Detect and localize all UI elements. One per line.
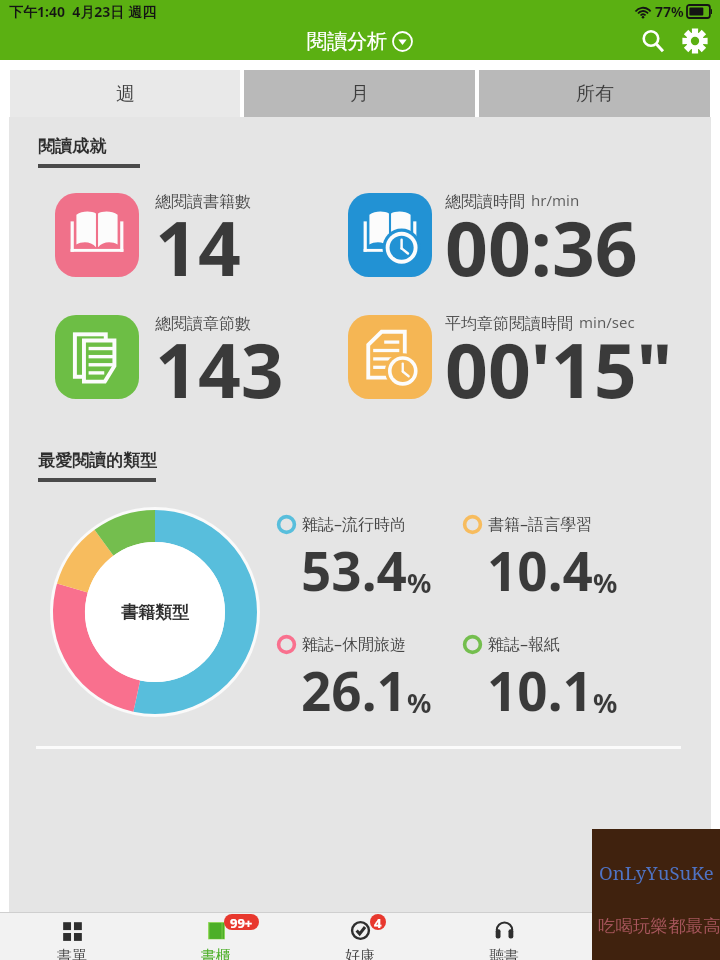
staticText: 聽書 [489,947,519,960]
staticText: 143 [155,318,284,420]
button[interactable]: 月 [244,70,475,117]
button[interactable]: 閱讀分析 [307,29,413,54]
staticText: 所有 [576,82,614,106]
staticText: 閱讀分析 [307,29,387,54]
staticText: 最愛閱讀的類型 [38,450,157,471]
staticText: % [593,564,618,601]
staticText: 書單 [57,947,87,960]
staticText: 10.1 [487,654,593,726]
staticText: 00'15" [445,318,673,420]
staticText: 53.4 [301,534,407,606]
staticText: 好康 [345,947,375,960]
staticText: 99+ [230,914,253,930]
staticText: OnLyYuSuKe [599,860,714,885]
button[interactable]: 更多 [576,913,720,960]
staticText: 10.4 [487,534,593,606]
staticText: 77% [655,2,684,21]
button[interactable]: Search [632,22,674,60]
staticText: 00:36 [445,196,638,298]
button[interactable]: 所有 [479,70,710,117]
staticText: 雜誌–報紙 [488,633,561,655]
staticText: 書籍類型 [121,602,189,623]
staticText: 書櫃 [201,947,231,960]
staticText: % [593,684,618,721]
button[interactable]: 書單 [0,913,144,960]
staticText: % [407,684,432,721]
staticText: min/sec [579,312,635,332]
button[interactable]: Settings [674,22,716,60]
staticText: 總閱讀章節數 [155,314,251,334]
button[interactable]: 4 [288,913,432,960]
staticText: 總閱讀時間 [445,192,525,212]
staticText: 週 [116,82,135,106]
staticText: hr/min [531,190,580,210]
staticText: 14 [155,196,241,298]
staticText: 月 [350,82,369,106]
button[interactable]: 99+ [144,913,288,960]
staticText: % [407,564,432,601]
staticText: 下午1:40 4月23日 週四 [9,2,156,21]
staticText: 平均章節閱讀時間 [445,314,573,334]
staticText: 總閱讀書籍數 [155,192,251,212]
staticText: 書籍–語言學習 [488,513,593,535]
button[interactable]: 週 [10,70,240,117]
staticText: 雜誌–休閒旅遊 [302,633,407,655]
button[interactable]: 聽書 [432,913,576,960]
staticText: 4 [374,914,382,930]
staticText: 閱讀成就 [38,136,106,157]
staticText: 吃喝玩樂都最高 [598,915,720,937]
staticText: 26.1 [301,654,407,726]
staticText: 雜誌–流行時尚 [302,513,407,535]
